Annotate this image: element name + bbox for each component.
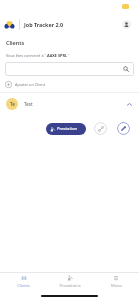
button[interactable]: Prestation <box>46 123 86 135</box>
staticText: Prestations <box>59 283 81 288</box>
staticText: Ajouter un Client <box>15 82 46 87</box>
button[interactable]: Account <box>122 20 131 29</box>
staticText: Clients <box>6 39 25 46</box>
button[interactable]: Prestations <box>47 273 93 288</box>
button[interactable]: Clients <box>0 273 47 288</box>
staticText: Prestation <box>57 126 78 132</box>
staticText: Menu <box>111 283 122 288</box>
staticText: Te <box>10 101 15 107</box>
button[interactable]: Search <box>5 62 134 76</box>
button[interactable]: Call <box>94 122 107 135</box>
staticText: Job Tracker 2.0 <box>24 21 64 28</box>
button[interactable]: Edit <box>117 122 130 135</box>
staticText: Clients <box>17 283 30 288</box>
button[interactable]: Menu <box>93 273 139 288</box>
staticText: Test <box>24 101 33 107</box>
button[interactable]: Te <box>0 97 139 111</box>
staticText: Vous êtes connecté à " AAXE SPRL " <box>6 53 70 58</box>
button[interactable]: Ajouter un Client <box>4 80 47 89</box>
